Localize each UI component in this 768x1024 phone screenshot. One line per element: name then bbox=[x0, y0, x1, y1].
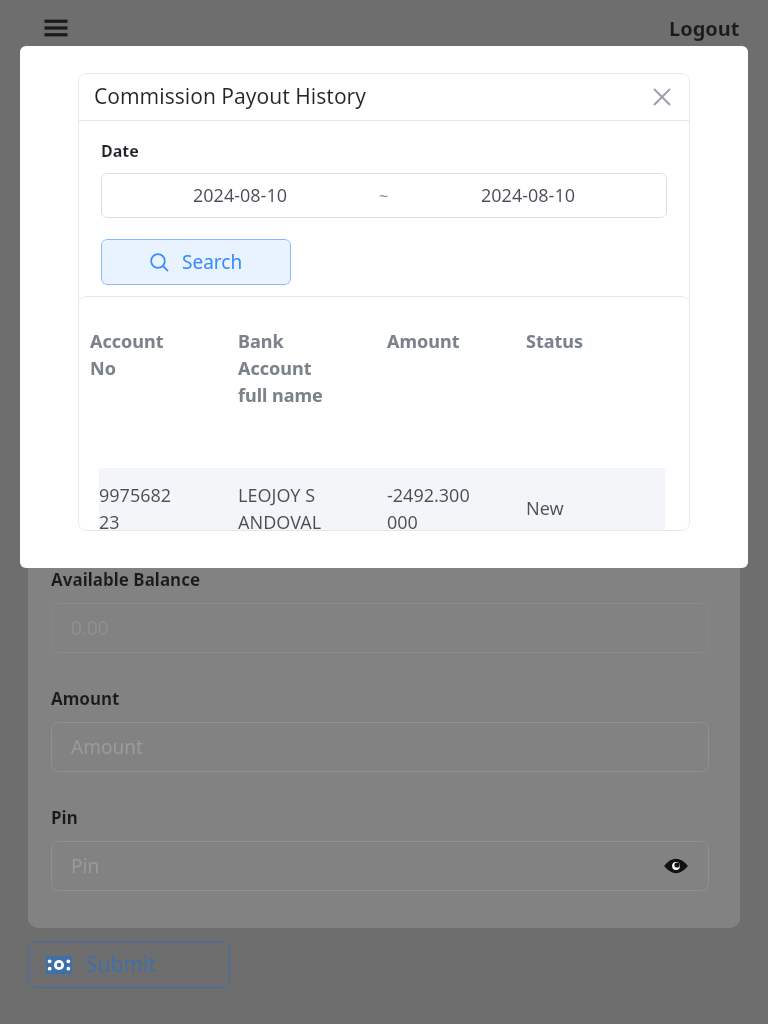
staticText: Status bbox=[526, 329, 584, 354]
button[interactable]: 9975682 23 bbox=[99, 468, 665, 531]
staticText: New bbox=[526, 496, 564, 521]
button[interactable]: Show pin bbox=[661, 851, 691, 881]
staticText: -2492.300 000 bbox=[387, 483, 470, 531]
staticText: Submit bbox=[86, 950, 157, 979]
staticText: 0.00 bbox=[71, 615, 109, 641]
staticText: Amount bbox=[387, 329, 460, 354]
button[interactable]: Search bbox=[101, 239, 291, 285]
staticText: Account No bbox=[90, 329, 164, 380]
staticText: Pin bbox=[51, 806, 78, 829]
staticText: 9975682 23 bbox=[99, 483, 172, 531]
button[interactable]: Amount bbox=[51, 722, 709, 772]
staticText: Bank Account full name bbox=[238, 329, 323, 407]
staticText: Available Balance bbox=[51, 568, 201, 591]
staticText: Pin bbox=[71, 853, 100, 879]
staticText: ~ bbox=[379, 185, 389, 207]
staticText: Commission Payout History bbox=[94, 82, 366, 111]
staticText: LEOJOY S ANDOVAL bbox=[238, 483, 322, 531]
button[interactable]: 2024-08-10 bbox=[101, 173, 667, 218]
staticText: Amount bbox=[51, 687, 120, 710]
staticText: Amount bbox=[71, 734, 143, 760]
button[interactable]: Pin bbox=[51, 841, 709, 891]
button[interactable]: Menu bbox=[36, 8, 76, 48]
staticText: Date bbox=[101, 140, 139, 162]
staticText: Logout bbox=[669, 15, 740, 42]
staticText: 2024-08-10 bbox=[481, 183, 575, 208]
staticText: Search bbox=[182, 249, 243, 275]
button[interactable]: Logout bbox=[669, 15, 740, 42]
button[interactable]: Submit bbox=[28, 941, 230, 988]
staticText: 2024-08-10 bbox=[193, 183, 287, 208]
button[interactable]: Close bbox=[646, 81, 678, 113]
